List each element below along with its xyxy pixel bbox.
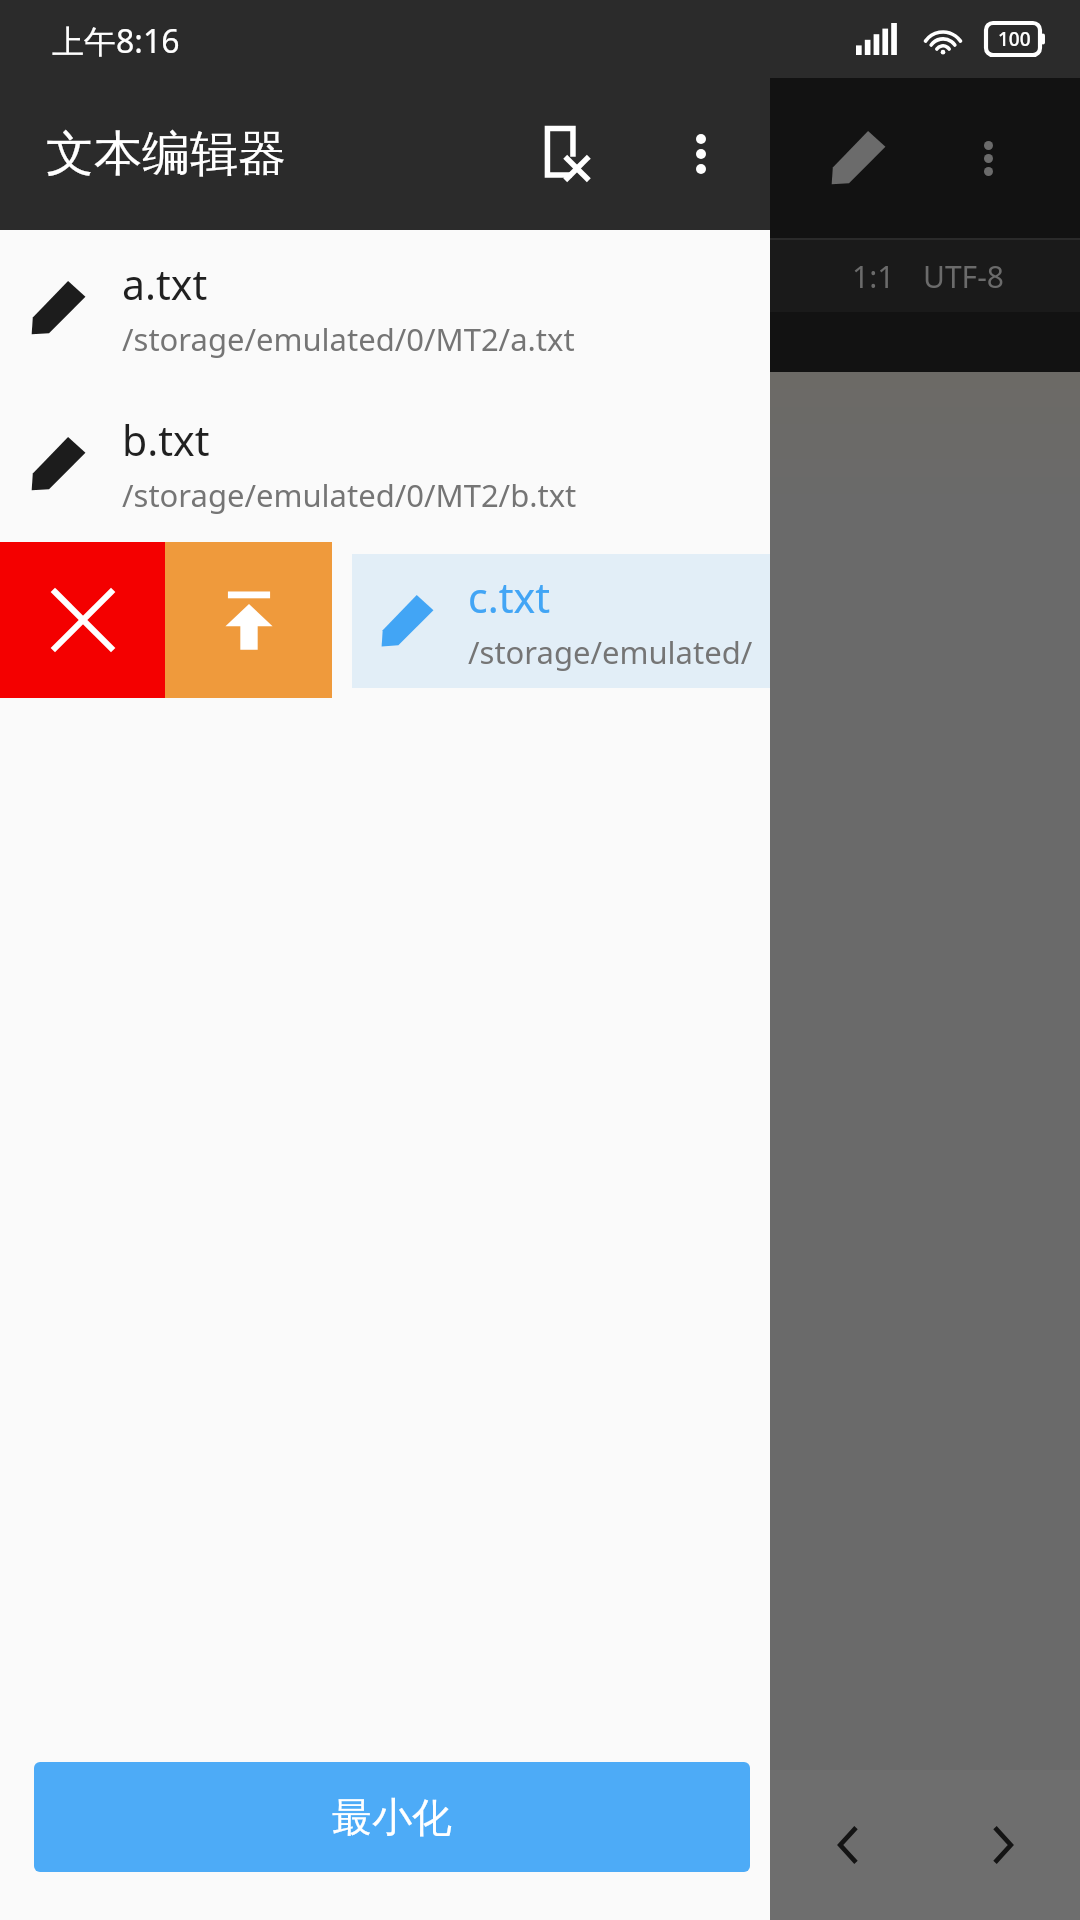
button[interactable]: b.txt — [0, 386, 770, 542]
button[interactable]: c.txt — [352, 554, 770, 688]
button[interactable]: 最小化 — [34, 1762, 750, 1872]
button[interactable]: Edit — [810, 110, 906, 206]
staticText: a.txt — [122, 256, 208, 312]
button[interactable]: Previous — [770, 1770, 925, 1920]
staticText: /storage/emulated/0/MT2/b.txt — [122, 474, 577, 516]
button[interactable]: Next — [925, 1770, 1080, 1920]
button[interactable]: Close — [0, 542, 165, 698]
staticText: 100 — [998, 26, 1031, 52]
button[interactable]: More options — [940, 110, 1036, 206]
staticText: /storage/emulated/0/MT2/a.txt — [122, 318, 575, 360]
button[interactable]: Close file — [510, 98, 622, 210]
button[interactable]: Save — [165, 542, 332, 698]
staticText: b.txt — [122, 412, 210, 468]
button[interactable]: a.txt — [0, 230, 770, 386]
staticText: /storage/emulated/0/MT2/c.txt — [468, 631, 770, 673]
staticText: UTF-8 — [923, 256, 1004, 297]
staticText: 1:1 — [852, 256, 895, 297]
staticText: 最小化 — [332, 1792, 452, 1842]
button[interactable]: More options — [645, 98, 757, 210]
staticText: c.txt — [468, 569, 550, 625]
staticText: 上午8:16 — [52, 19, 180, 63]
staticText: 文本编辑器 — [46, 124, 286, 184]
